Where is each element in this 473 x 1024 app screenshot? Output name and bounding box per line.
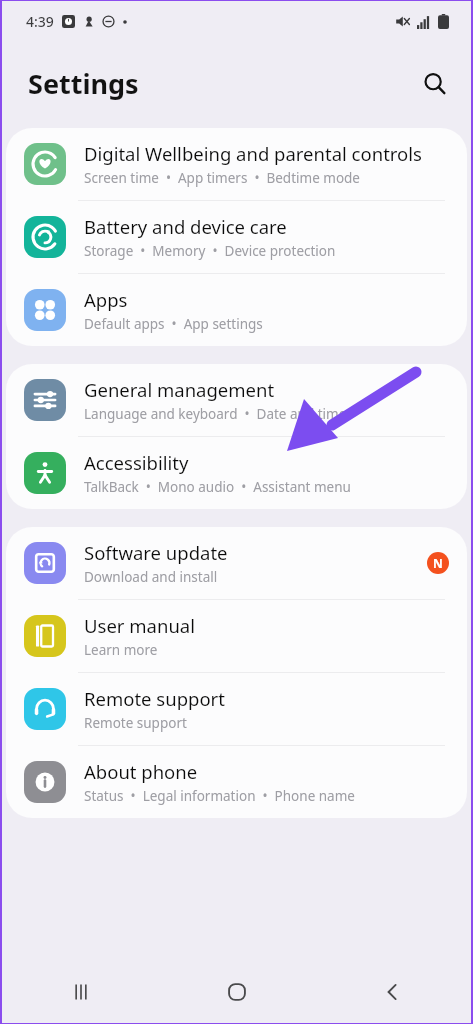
staticText: Battery and device care [84, 214, 287, 239]
button[interactable]: About phone [6, 746, 467, 818]
staticText: Download and install [84, 568, 218, 586]
staticText: Status • Legal information • Phone name [84, 787, 355, 805]
staticText: Accessibility [84, 450, 189, 475]
staticText: User manual [84, 613, 195, 638]
button[interactable]: Home [159, 961, 315, 1023]
button[interactable]: General management [6, 364, 467, 436]
button[interactable]: Apps [6, 274, 467, 346]
staticText: Language and keyboard • Date and time [84, 405, 347, 423]
button[interactable]: Battery and device care [6, 201, 467, 273]
button[interactable]: Recent apps [2, 961, 159, 1023]
staticText: Settings [28, 65, 139, 102]
button[interactable]: User manual [6, 600, 467, 672]
button[interactable]: Software update [6, 527, 467, 599]
staticText: TalkBack • Mono audio • Assistant menu [84, 478, 351, 496]
button[interactable]: Digital Wellbeing and parental controls [6, 128, 467, 200]
staticText: Digital Wellbeing and parental controls [84, 141, 422, 166]
staticText: Learn more [84, 641, 158, 659]
staticText: Screen time • App timers • Bedtime mode [84, 169, 360, 187]
staticText: General management [84, 377, 275, 402]
button[interactable]: Remote support [6, 673, 467, 745]
staticText: Software update [84, 540, 228, 565]
staticText: About phone [84, 759, 198, 784]
staticText: 4:39 [26, 12, 54, 31]
button[interactable]: Search [411, 60, 457, 106]
staticText: Default apps • App settings [84, 315, 263, 333]
staticText: Apps [84, 287, 128, 312]
staticText: N [433, 555, 443, 571]
button[interactable]: Accessibility [6, 437, 467, 509]
staticText: Storage • Memory • Device protection [84, 242, 336, 260]
staticText: Remote support [84, 714, 187, 732]
staticText: Remote support [84, 686, 225, 711]
button[interactable]: Back [315, 961, 471, 1023]
